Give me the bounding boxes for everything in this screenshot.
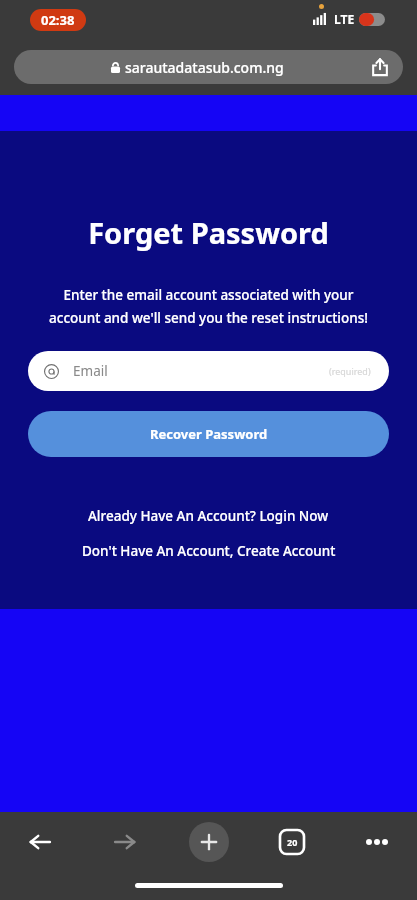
button[interactable]: Share [369,56,391,78]
staticText: Email [73,362,108,380]
staticText: Forget Password [88,213,329,252]
button[interactable]: Already Have An Account? Login Now [0,502,417,530]
staticText: Don't Have An Account, Create Account [82,542,336,560]
button[interactable]: Don't Have An Account, Create Account [0,537,417,565]
staticText: 02:38 [41,11,75,29]
staticText: Recover Password [150,425,268,443]
button[interactable]: sarautadatasub.com.ng [14,50,403,84]
button[interactable]: More options [355,820,399,864]
staticText: sarautadatasub.com.ng [125,58,284,77]
staticText: Enter the email account associated with … [24,286,393,327]
button[interactable]: New tab [189,822,229,862]
staticText: (required) [329,365,371,377]
button[interactable]: Recover Password [28,411,389,457]
button[interactable]: Tabs, 20 open [270,820,314,864]
staticText: LTE [334,11,355,27]
staticText: 20 [287,836,298,848]
button[interactable]: Email [28,351,389,391]
button[interactable]: Back [18,820,62,864]
button[interactable]: Forward [103,820,147,864]
staticText: Already Have An Account? Login Now [88,507,329,525]
